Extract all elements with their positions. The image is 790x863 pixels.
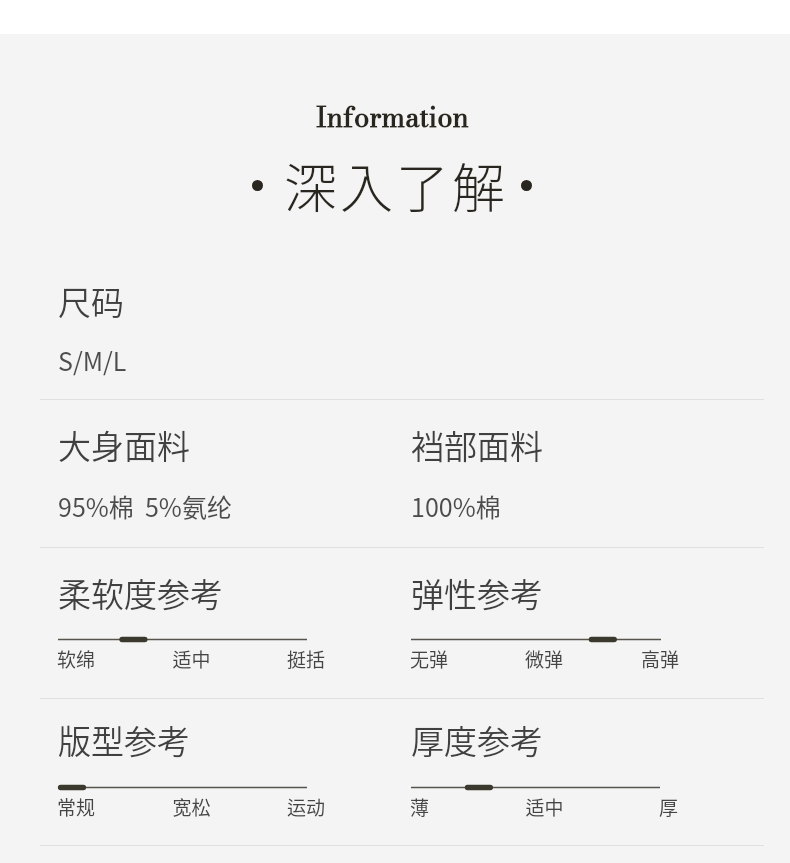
staticText: 宽松 (147, 793, 236, 821)
button[interactable] (393, 548, 764, 698)
staticText: 常规 (57, 793, 147, 821)
staticText: 薄 (410, 793, 500, 821)
staticText: 弹性参考 (411, 569, 543, 617)
other: 软绵 / 适中 / 挺括 (58, 634, 307, 645)
staticText: 高弹 (589, 645, 679, 673)
staticText: 深入了解 (284, 147, 508, 224)
staticText: 柔软度参考 (58, 569, 223, 617)
staticText: 版型参考 (58, 716, 190, 764)
staticText: 微弹 (499, 645, 589, 673)
other: Decorative bullet (521, 180, 532, 191)
staticText: 100%棉 (411, 488, 501, 524)
staticText: Information (316, 96, 469, 138)
staticText: 运动 (236, 793, 325, 821)
other: Decorative bullet (252, 180, 263, 191)
staticText: S/M/L (58, 342, 127, 378)
staticText: 厚 (589, 793, 678, 821)
button[interactable] (393, 699, 764, 845)
staticText: 95%棉 5%氨纶 (58, 488, 232, 524)
other: 无弹 / 微弹 / 高弹 (411, 634, 661, 645)
staticText: 适中 (500, 793, 589, 821)
other: 常规 / 宽松 / 运动 (58, 782, 307, 793)
button[interactable] (40, 400, 393, 547)
button[interactable] (393, 400, 764, 547)
button[interactable] (40, 250, 393, 399)
staticText: 适中 (147, 645, 236, 673)
button[interactable] (40, 699, 393, 845)
staticText: 挺括 (236, 645, 325, 673)
staticText: 大身面料 (58, 421, 190, 469)
staticText: 尺码 (58, 277, 124, 325)
other: 薄 / 适中 / 厚 (411, 782, 660, 793)
button[interactable] (40, 548, 393, 698)
staticText: 裆部面料 (411, 421, 543, 469)
staticText: 厚度参考 (411, 716, 543, 764)
staticText: 软绵 (57, 645, 147, 673)
staticText: 无弹 (410, 645, 499, 673)
